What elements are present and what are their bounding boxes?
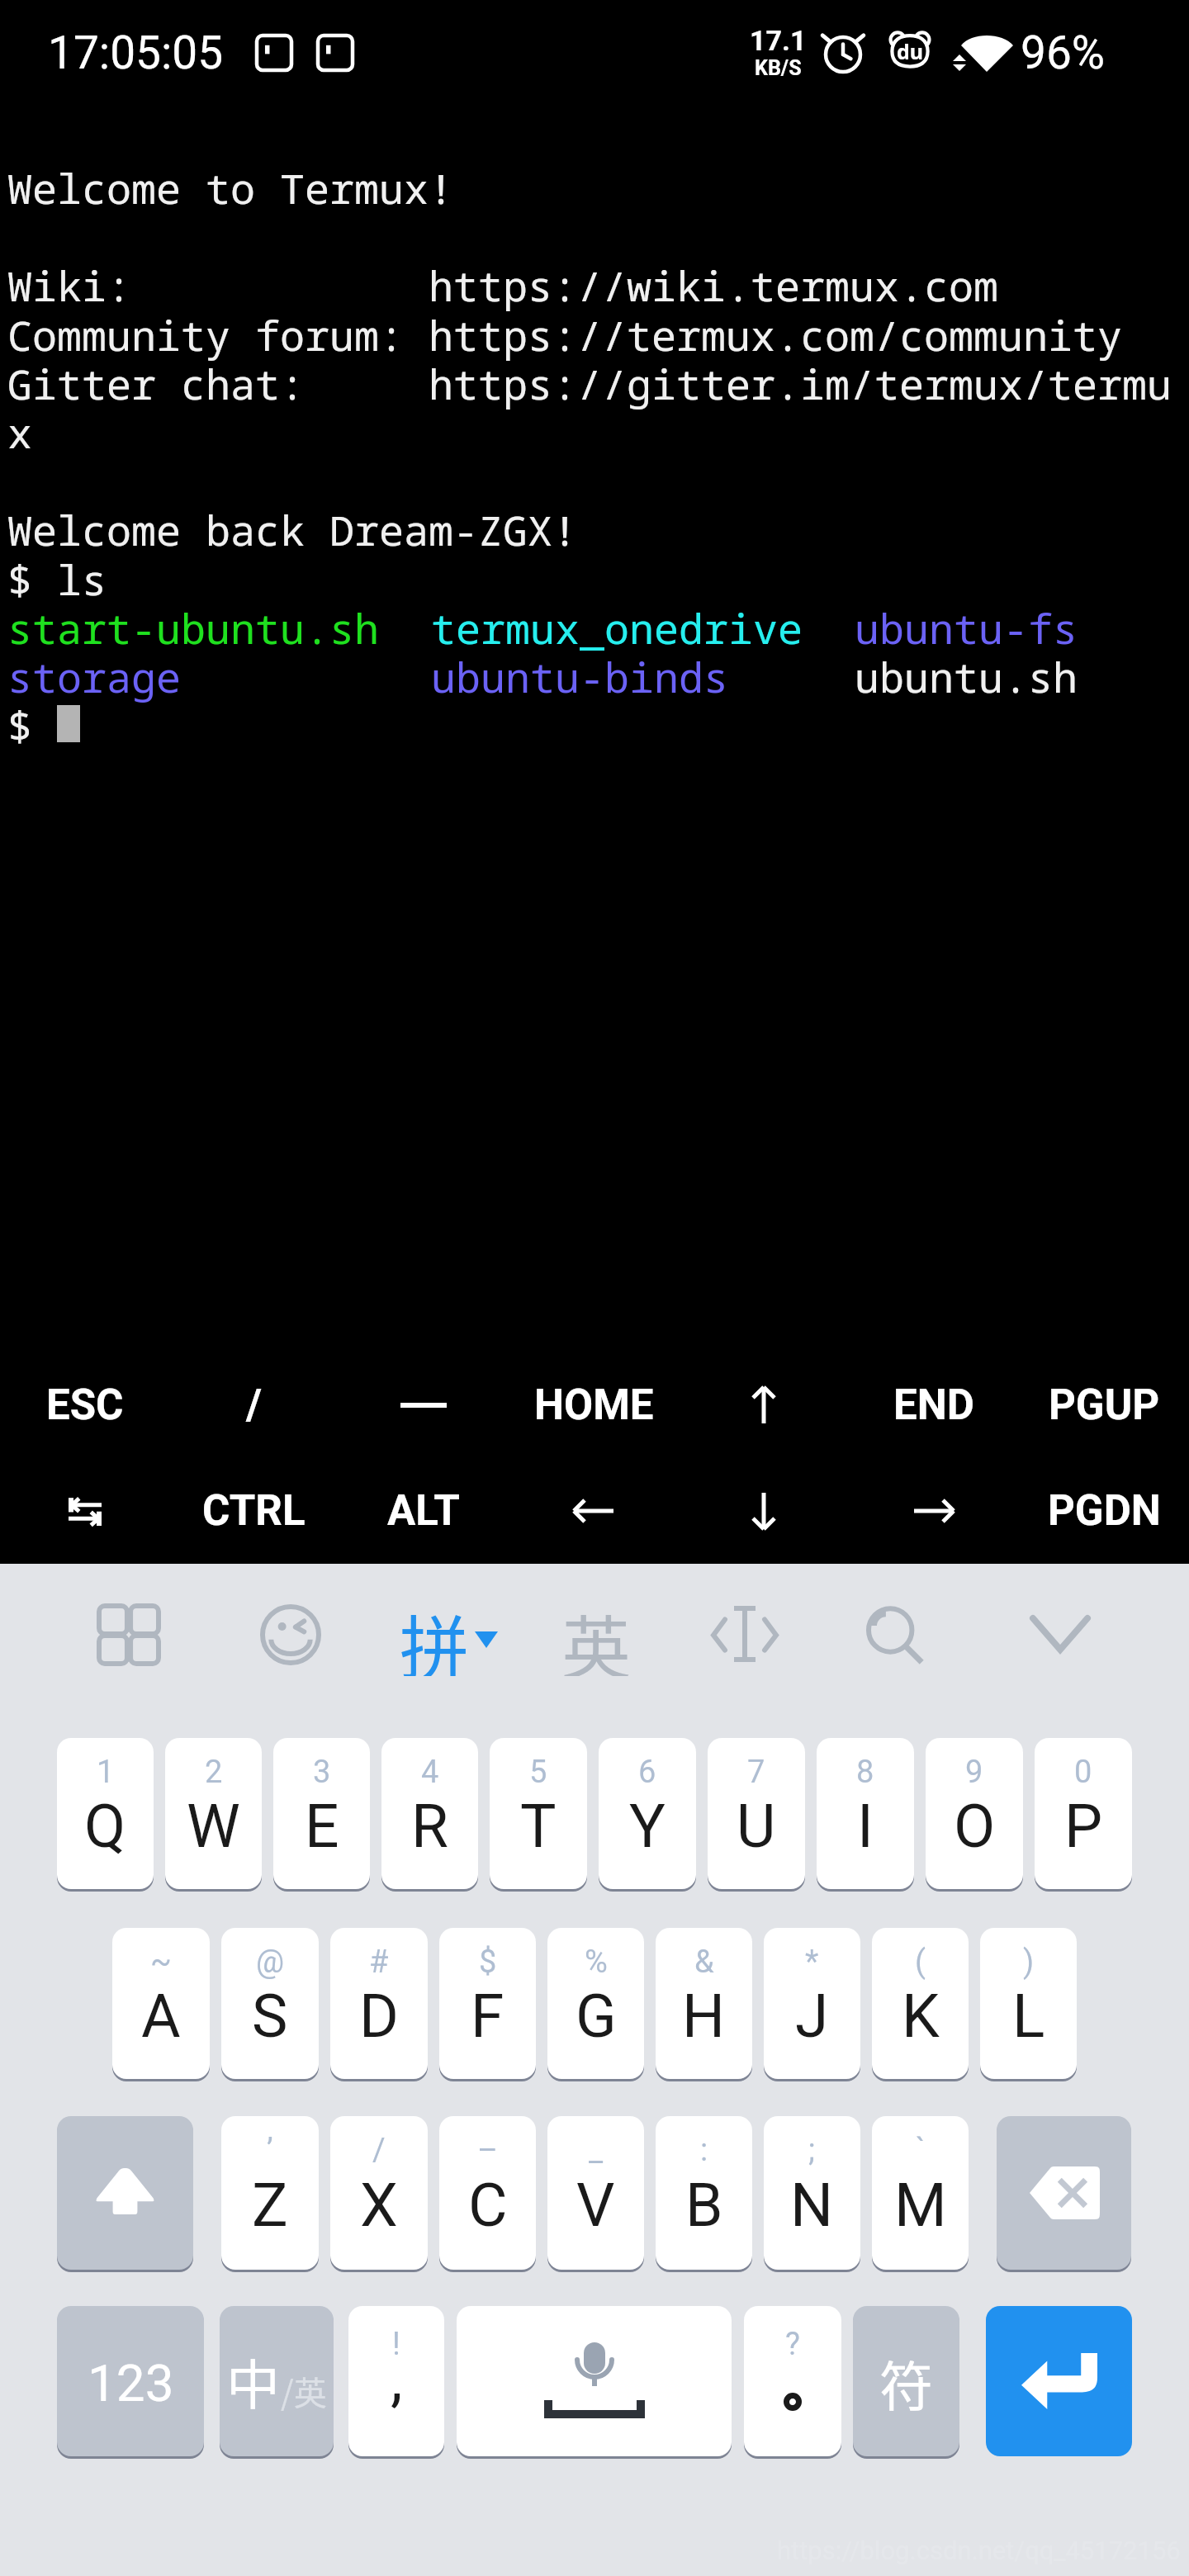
staticText: ` [916, 2132, 926, 2169]
button[interactable]: Keyboard layouts [86, 1594, 172, 1675]
staticText: ; [808, 2132, 816, 2169]
button[interactable]: ? [744, 2306, 841, 2456]
staticText: 英 [561, 1593, 632, 1676]
staticText: CTRL [202, 1486, 306, 1536]
button[interactable]: Hide keyboard [1019, 1600, 1101, 1668]
button[interactable]: / [169, 1352, 339, 1458]
button[interactable]: Down [679, 1458, 849, 1564]
button[interactable]: % [547, 1928, 644, 2079]
button[interactable]: 中 [220, 2306, 334, 2456]
other: Dash [400, 1401, 447, 1409]
button[interactable]: Enter [986, 2306, 1132, 2456]
other: Tab [69, 1496, 102, 1526]
staticText: termux_onedrive [431, 600, 803, 656]
staticText: N [790, 2170, 834, 2241]
staticText: A [141, 1981, 181, 2052]
button[interactable]: Space [457, 2306, 732, 2456]
staticText: B [685, 2170, 723, 2241]
staticText: ~ [150, 1944, 172, 1981]
button[interactable]: END [849, 1352, 1019, 1458]
button[interactable]: HOME [509, 1352, 679, 1458]
button[interactable]: Backspace [997, 2116, 1131, 2270]
button[interactable]: – [439, 2116, 536, 2270]
staticText: Community forum: https://termux.com/comm… [7, 307, 1122, 363]
staticText: % [585, 1944, 608, 1981]
button[interactable]: : [656, 2116, 752, 2270]
button[interactable]: 4 [381, 1738, 478, 1889]
button[interactable]: 8 [817, 1738, 914, 1889]
button[interactable]: Tab [0, 1458, 169, 1564]
button[interactable]: PGDN [1019, 1458, 1189, 1564]
button[interactable]: / [330, 2116, 428, 2270]
staticText: $ ls [7, 552, 107, 608]
staticText: E [305, 1791, 339, 1862]
button[interactable]: Search [850, 1595, 936, 1673]
button[interactable]: ) [980, 1928, 1077, 2079]
button[interactable]: ’ [221, 2116, 319, 2270]
staticText: S [252, 1981, 288, 2052]
staticText: 1 [97, 1754, 115, 1791]
staticText: Gitter chat: https://gitter.im/termux/te… [7, 356, 1172, 412]
staticText: Y [629, 1791, 666, 1862]
button[interactable]: ESC [0, 1352, 169, 1458]
button[interactable]: ` [872, 2116, 969, 2270]
staticText: Welcome back Dream-ZGX! [7, 502, 577, 558]
button[interactable]: CTRL [169, 1458, 339, 1564]
staticText: 2 [205, 1754, 223, 1791]
staticText: 96% [1021, 26, 1106, 79]
button[interactable]: Up [679, 1352, 849, 1458]
button[interactable]: & [656, 1928, 752, 2079]
button[interactable]: Emoji [248, 1597, 334, 1673]
button[interactable]: 0 [1035, 1738, 1132, 1889]
button[interactable]: Dash [339, 1352, 509, 1458]
staticText: ALT [387, 1486, 460, 1536]
staticText: J [795, 1981, 829, 2052]
staticText: /英 [281, 2367, 327, 2415]
staticText: 17.1 [750, 24, 807, 57]
staticText: , [391, 2344, 403, 2415]
staticText: 17:05:05 [48, 26, 224, 79]
staticText: U [737, 1791, 776, 1862]
staticText: Q [84, 1791, 126, 1862]
button[interactable]: 9 [926, 1738, 1023, 1889]
staticText: / [372, 2132, 386, 2169]
button[interactable]: Right [849, 1458, 1019, 1564]
button[interactable]: @ [221, 1928, 319, 2079]
button[interactable]: 拼 [400, 1593, 498, 1676]
button[interactable]: # [330, 1928, 428, 2079]
staticText: 拼 [400, 1593, 470, 1676]
button[interactable]: ; [764, 2116, 860, 2270]
staticText: 8 [856, 1754, 874, 1791]
staticText: L [1012, 1981, 1045, 2052]
button[interactable]: * [764, 1928, 860, 2079]
button[interactable]: Shift [57, 2116, 193, 2270]
button[interactable]: 5 [490, 1738, 587, 1889]
staticText: ubuntu-binds [431, 649, 728, 705]
button[interactable]: ! [348, 2306, 444, 2456]
button[interactable]: Left [509, 1458, 679, 1564]
staticText: D [359, 1981, 399, 2052]
staticText: HOME [534, 1380, 654, 1430]
other: Down [742, 1489, 785, 1532]
button[interactable]: 6 [599, 1738, 696, 1889]
button[interactable]: _ [547, 2116, 644, 2270]
button[interactable]: ALT [339, 1458, 509, 1564]
button[interactable]: 1 [57, 1738, 154, 1889]
button[interactable]: 3 [273, 1738, 370, 1889]
staticText: ! [392, 2326, 400, 2363]
button[interactable]: ~ [112, 1928, 210, 2079]
button[interactable]: 英 [561, 1593, 632, 1676]
button[interactable]: 符 [853, 2306, 959, 2456]
button[interactable]: Text editing [700, 1595, 789, 1673]
button[interactable]: ( [872, 1928, 969, 2079]
button[interactable]: 2 [165, 1738, 262, 1889]
staticText: @ [256, 1944, 285, 1981]
staticText: F [471, 1981, 504, 2052]
button[interactable]: 7 [708, 1738, 805, 1889]
staticText: 3 [313, 1754, 331, 1791]
button[interactable]: PGUP [1019, 1352, 1189, 1458]
staticText: 123 [88, 2353, 174, 2413]
button[interactable]: 123 [57, 2306, 204, 2456]
button[interactable]: $ [439, 1928, 536, 2079]
